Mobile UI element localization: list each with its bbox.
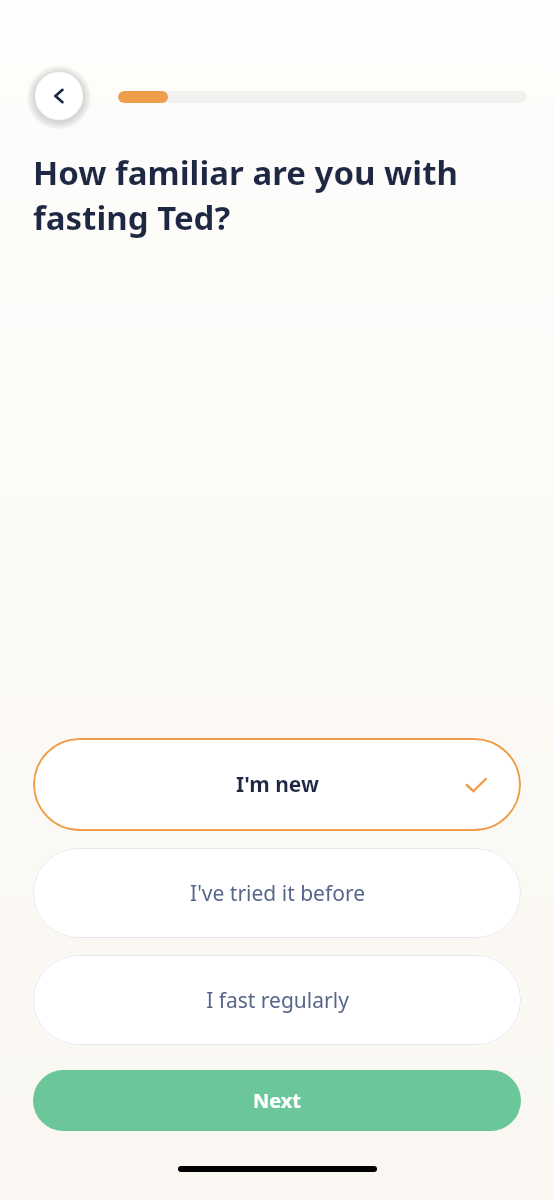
staticText: I'm new (236, 770, 319, 799)
button[interactable]: I've tried it before (33, 848, 521, 938)
button[interactable]: I'm new (33, 738, 521, 831)
staticText: How familiar are you with fasting Ted? (33, 150, 503, 240)
staticText: I fast regularly (206, 986, 349, 1015)
staticText: Next (253, 1087, 302, 1114)
button[interactable]: I fast regularly (33, 955, 521, 1045)
staticText: I've tried it before (190, 879, 365, 908)
button[interactable]: Back (35, 72, 83, 120)
button[interactable]: Next (33, 1070, 521, 1131)
